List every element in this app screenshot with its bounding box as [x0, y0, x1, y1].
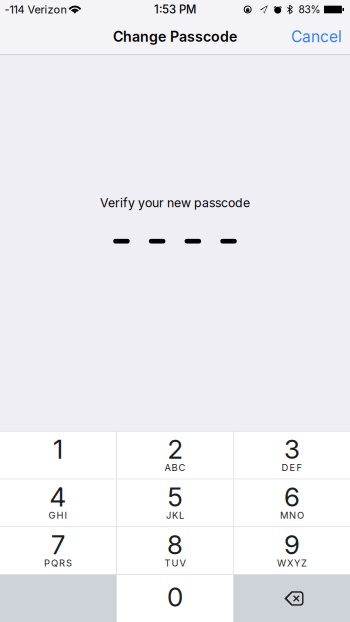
staticText: PQRS [44, 558, 72, 569]
staticText: TUV [164, 558, 185, 569]
staticText: 2 [167, 433, 182, 465]
staticText: Verify your new passcode [100, 195, 250, 210]
staticText: JKL [166, 510, 184, 521]
staticText: MNO [280, 510, 304, 521]
staticText: 0 [167, 581, 183, 613]
staticText: 1:53 PM [154, 3, 196, 16]
button[interactable]: 9 [234, 527, 350, 574]
button[interactable]: Cancel [283, 22, 350, 52]
staticText: 83% [298, 3, 320, 16]
staticText: Cancel [291, 27, 342, 46]
staticText: 4 [50, 481, 67, 513]
staticText: 9 [284, 529, 300, 560]
button[interactable]: 3 [234, 432, 350, 479]
button[interactable]: 7 [0, 527, 116, 574]
button[interactable]: Delete [234, 575, 350, 622]
staticText: 1 [53, 433, 63, 465]
button[interactable]: 8 [117, 527, 233, 574]
button[interactable]: 4 [0, 479, 116, 526]
staticText: DEF [281, 462, 302, 473]
button[interactable]: 6 [234, 479, 350, 526]
staticText: GHI [49, 510, 68, 521]
staticText: 5 [167, 481, 182, 513]
button[interactable]: 1 [0, 432, 116, 479]
button[interactable]: 5 [117, 479, 233, 526]
staticText: Change Passcode [113, 28, 237, 45]
staticText: WXYZ [277, 558, 307, 569]
staticText: ABC [164, 462, 185, 473]
button[interactable]: 0 [117, 575, 233, 622]
staticText: 3 [284, 433, 300, 465]
staticText: 6 [284, 481, 300, 513]
staticText: 8 [167, 529, 183, 560]
button[interactable]: 2 [117, 432, 233, 479]
staticText: 7 [51, 529, 65, 560]
staticText: -114 Verizon [4, 3, 66, 16]
